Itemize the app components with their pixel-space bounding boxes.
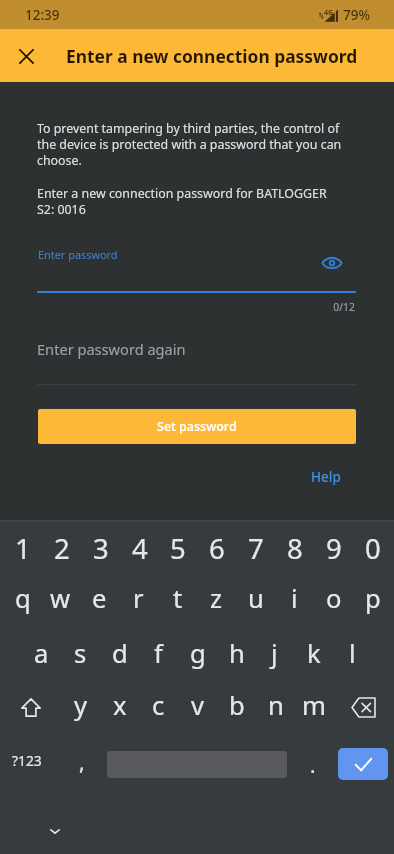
button[interactable]: Enter xyxy=(338,748,388,780)
button[interactable]: 9 xyxy=(314,524,353,572)
button[interactable]: 5 xyxy=(158,524,197,572)
staticText: 7 xyxy=(248,530,264,567)
button[interactable]: e xyxy=(80,574,119,622)
staticText: 9 xyxy=(326,530,342,567)
button[interactable]: s xyxy=(61,629,100,677)
staticText: n xyxy=(268,688,284,723)
staticText: o xyxy=(326,581,342,616)
staticText: z xyxy=(210,581,223,616)
staticText: s xyxy=(74,636,87,671)
button[interactable]: Backspace xyxy=(343,683,383,731)
staticText: b xyxy=(229,688,245,723)
staticText: t xyxy=(173,581,183,616)
staticText: 8 xyxy=(287,530,303,567)
button[interactable]: 4 xyxy=(120,524,159,572)
button[interactable]: r xyxy=(119,574,158,622)
button[interactable]: l xyxy=(333,629,372,677)
button[interactable]: 2 xyxy=(42,524,81,572)
staticText: y xyxy=(74,688,88,723)
button[interactable]: n xyxy=(256,681,295,729)
button[interactable]: m xyxy=(294,681,333,729)
button[interactable]: 7 xyxy=(236,524,275,572)
staticText: m xyxy=(302,688,326,723)
staticText: 12:39 xyxy=(25,6,60,24)
staticText: a xyxy=(34,636,49,671)
staticText: d xyxy=(112,636,128,671)
button[interactable]: a xyxy=(22,629,61,677)
button[interactable]: , xyxy=(64,740,100,784)
button[interactable]: p xyxy=(353,574,392,622)
staticText: 4 xyxy=(132,530,148,567)
staticText: To prevent tampering by third parties, t… xyxy=(37,120,349,169)
staticText: 79% xyxy=(343,6,370,24)
staticText: 2 xyxy=(54,530,70,567)
button[interactable]: i xyxy=(275,574,314,622)
button[interactable]: Set password xyxy=(38,409,356,444)
staticText: k xyxy=(307,636,321,671)
staticText: 6 xyxy=(209,530,225,567)
button[interactable]: . xyxy=(296,743,330,787)
staticText: x xyxy=(113,688,127,723)
staticText: l xyxy=(349,636,356,671)
button[interactable]: Close xyxy=(10,40,42,72)
button[interactable]: g xyxy=(178,629,217,677)
staticText: , xyxy=(79,748,85,777)
button[interactable]: v xyxy=(178,681,217,729)
staticText: ?123 xyxy=(12,751,42,770)
staticText: Enter password again xyxy=(37,339,186,359)
button[interactable]: Show password xyxy=(311,248,353,278)
staticText: Set password xyxy=(157,418,237,435)
staticText: g xyxy=(190,636,206,671)
staticText: p xyxy=(365,581,381,616)
button[interactable]: 1 xyxy=(3,524,42,572)
button[interactable]: 8 xyxy=(275,524,314,572)
staticText: w xyxy=(50,581,71,616)
staticText: 4G xyxy=(324,8,334,18)
button[interactable]: Shift xyxy=(11,683,51,731)
staticText: 0 xyxy=(365,530,381,567)
button[interactable]: 0 xyxy=(353,524,392,572)
button[interactable]: o xyxy=(314,574,353,622)
staticText: u xyxy=(248,581,264,616)
button[interactable]: k xyxy=(294,629,333,677)
button[interactable]: 3 xyxy=(81,524,120,572)
button[interactable]: h xyxy=(217,629,256,677)
staticText: c xyxy=(152,688,165,723)
staticText: Enter a new connection password for BATL… xyxy=(37,185,347,218)
button[interactable]: z xyxy=(197,574,236,622)
button[interactable]: x xyxy=(100,681,139,729)
staticText: e xyxy=(92,581,107,616)
button[interactable]: b xyxy=(217,681,256,729)
button[interactable]: Help xyxy=(305,465,347,489)
button[interactable]: w xyxy=(41,574,80,622)
button[interactable]: Hide keyboard xyxy=(34,811,76,851)
button[interactable]: t xyxy=(158,574,197,622)
staticText: 3 xyxy=(93,530,109,567)
staticText: Enter a new connection password xyxy=(66,44,358,68)
staticText: 1 xyxy=(15,530,31,567)
button[interactable]: c xyxy=(139,681,178,729)
staticText: . xyxy=(310,752,316,779)
staticText: f xyxy=(154,636,163,671)
staticText: r xyxy=(133,581,144,616)
staticText: 0/12 xyxy=(0,300,355,314)
staticText: 5 xyxy=(170,530,186,567)
button[interactable]: u xyxy=(236,574,275,622)
button[interactable]: 6 xyxy=(197,524,236,572)
button[interactable]: j xyxy=(255,629,294,677)
staticText: Enter password xyxy=(38,247,118,262)
button[interactable]: f xyxy=(139,629,178,677)
staticText: q xyxy=(15,581,31,616)
staticText: h xyxy=(229,636,245,671)
staticText: v xyxy=(191,688,205,723)
staticText: Help xyxy=(311,468,341,486)
staticText: i xyxy=(291,581,298,616)
button[interactable]: ?123 xyxy=(0,738,54,782)
staticText: j xyxy=(271,636,278,671)
button[interactable]: d xyxy=(100,629,139,677)
button[interactable]: q xyxy=(3,574,42,622)
button[interactable]: y xyxy=(61,681,100,729)
